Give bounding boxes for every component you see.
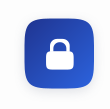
- button[interactable]: Secure app icon: [24, 18, 94, 88]
